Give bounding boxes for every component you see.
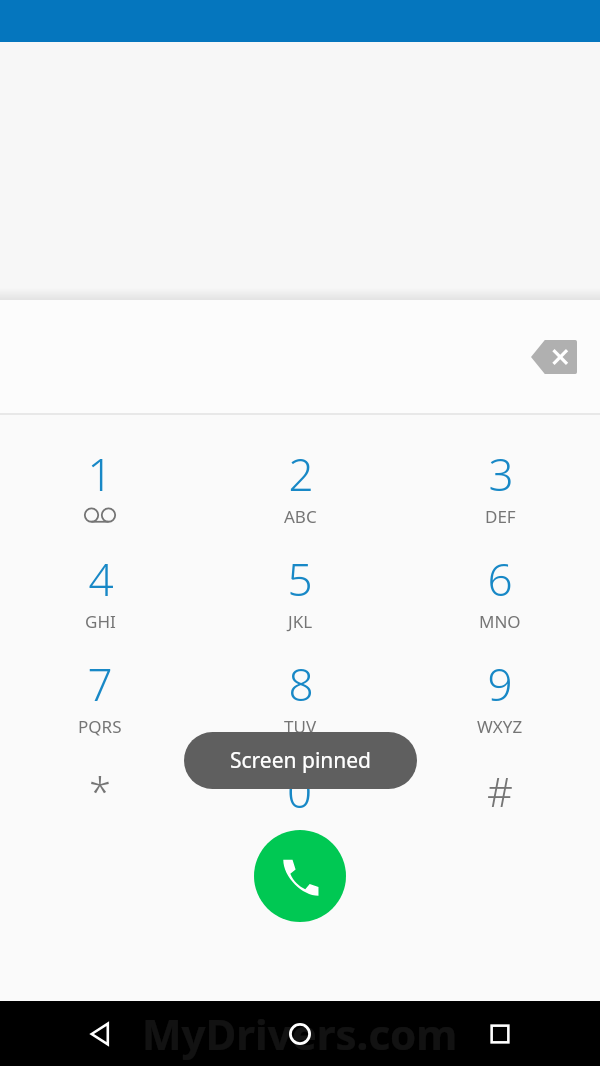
- staticText: #: [487, 764, 513, 818]
- staticText: GHI: [85, 610, 116, 633]
- staticText: 5: [287, 549, 313, 609]
- button[interactable]: 8: [200, 643, 400, 748]
- staticText: TUV: [284, 715, 317, 738]
- staticText: 8: [288, 654, 314, 714]
- staticText: 1: [87, 444, 113, 504]
- staticText: PQRS: [78, 715, 122, 738]
- staticText: ABC: [284, 505, 317, 528]
- button[interactable]: Back: [0, 1001, 200, 1066]
- staticText: 9: [487, 654, 513, 714]
- staticText: MNO: [479, 610, 521, 633]
- button[interactable]: 9: [400, 643, 600, 748]
- staticText: 3: [488, 444, 514, 504]
- button[interactable]: #: [400, 748, 600, 853]
- button[interactable]: 6: [400, 538, 600, 643]
- button[interactable]: 7: [0, 643, 200, 748]
- button[interactable]: 4: [0, 538, 200, 643]
- staticText: *: [89, 764, 112, 818]
- staticText: Screen pinned: [230, 746, 372, 775]
- button[interactable]: 3: [400, 433, 600, 538]
- button[interactable]: 5: [200, 538, 400, 643]
- staticText: 2: [288, 444, 314, 504]
- button[interactable]: 0: [200, 748, 400, 853]
- staticText: 7: [87, 654, 113, 714]
- staticText: 6: [487, 549, 513, 609]
- staticText: WXYZ: [477, 715, 523, 738]
- button[interactable]: Backspace: [526, 329, 582, 385]
- staticText: 0: [287, 761, 313, 821]
- staticText: JKL: [288, 610, 313, 633]
- button[interactable]: Home: [200, 1001, 400, 1066]
- button[interactable]: 1: [0, 433, 200, 538]
- staticText: MyDrivers.com: [142, 1005, 458, 1062]
- button[interactable]: 2: [200, 433, 400, 538]
- button[interactable]: Recent apps: [400, 1001, 600, 1066]
- button[interactable]: *: [0, 748, 200, 853]
- button[interactable]: Call: [254, 830, 346, 922]
- staticText: 4: [88, 549, 114, 609]
- staticText: DEF: [485, 505, 516, 528]
